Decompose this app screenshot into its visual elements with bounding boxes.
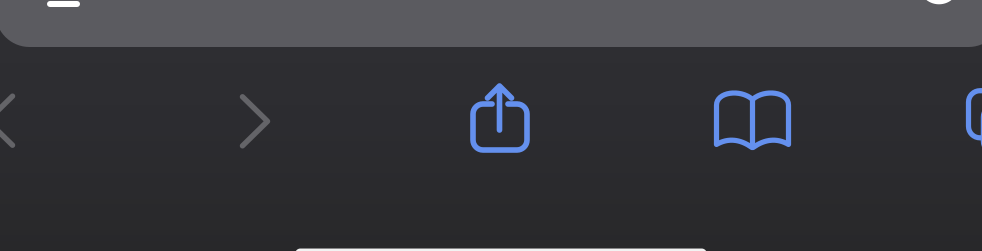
- button[interactable]: Tabs: [951, 62, 982, 182]
- button[interactable]: Bookmarks: [700, 59, 804, 179]
- button[interactable]: Back: [0, 61, 48, 181]
- button[interactable]: Share: [452, 60, 548, 180]
- button[interactable]: Forward: [207, 61, 303, 181]
